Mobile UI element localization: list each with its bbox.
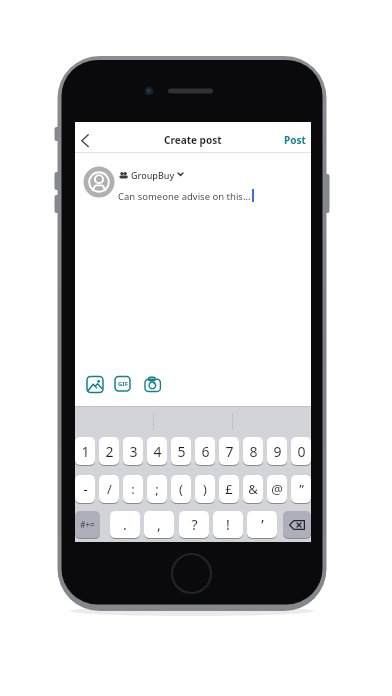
button[interactable]: GroupBuy [131, 168, 175, 182]
staticText: ? [191, 515, 198, 534]
button[interactable]: 2 [99, 437, 119, 465]
staticText: 6 [201, 442, 210, 461]
staticText: 9 [273, 442, 282, 461]
button[interactable]: ( [171, 475, 191, 503]
button[interactable]: ” [291, 475, 311, 503]
staticText: Post [284, 133, 306, 147]
staticText: & [248, 480, 258, 498]
staticText: 0 [297, 442, 306, 461]
staticText: / [107, 480, 112, 498]
staticText: - [83, 480, 88, 498]
button[interactable]: 0 [291, 437, 311, 465]
button[interactable]: 6 [195, 437, 215, 465]
staticText: 2 [105, 442, 114, 461]
staticText: ! [226, 515, 230, 534]
button[interactable]: . [110, 511, 140, 538]
staticText: GIF [118, 380, 128, 388]
staticText: ’ [261, 515, 264, 534]
staticText: ; [155, 480, 159, 498]
button[interactable]: 7 [219, 437, 239, 465]
staticText: Create post [164, 133, 222, 147]
button[interactable]: Post [274, 132, 306, 148]
staticText: 4 [153, 442, 162, 461]
staticText: £ [225, 480, 233, 498]
staticText: 8 [249, 442, 258, 461]
staticText: ) [203, 480, 207, 498]
staticText: #+= [80, 519, 95, 530]
button[interactable]: ’ [247, 511, 277, 538]
staticText: GroupBuy [131, 169, 175, 181]
staticText: 3 [129, 442, 138, 461]
staticText: ( [179, 480, 183, 498]
button[interactable]: - [75, 475, 95, 503]
button[interactable]: 9 [267, 437, 287, 465]
button[interactable] [283, 511, 311, 538]
button[interactable]: 1 [75, 437, 95, 465]
staticText: Can someone advise on this... [118, 190, 251, 203]
button[interactable]: 5 [171, 437, 191, 465]
button[interactable]: , [144, 511, 174, 538]
button[interactable]: 3 [123, 437, 143, 465]
button[interactable] [78, 131, 96, 149]
button[interactable]: #+= [75, 511, 100, 538]
button[interactable] [144, 374, 162, 394]
button[interactable]: 4 [147, 437, 167, 465]
button[interactable]: : [123, 475, 143, 503]
button[interactable]: @ [267, 475, 287, 503]
button[interactable] [85, 374, 105, 394]
staticText: 7 [225, 442, 234, 461]
staticText: @ [271, 480, 283, 498]
staticText: 5 [177, 442, 186, 461]
staticText: . [123, 515, 127, 534]
button[interactable]: £ [219, 475, 239, 503]
button[interactable]: ; [147, 475, 167, 503]
button[interactable]: GIF [114, 375, 131, 392]
staticText: ” [299, 480, 304, 498]
staticText: , [157, 515, 161, 534]
button[interactable]: / [99, 475, 119, 503]
staticText: : [131, 480, 135, 498]
button[interactable]: ! [213, 511, 243, 538]
button[interactable]: 8 [243, 437, 263, 465]
staticText: 1 [81, 442, 90, 461]
button[interactable]: ) [195, 475, 215, 503]
button[interactable]: ? [179, 511, 209, 538]
button[interactable]: & [243, 475, 263, 503]
